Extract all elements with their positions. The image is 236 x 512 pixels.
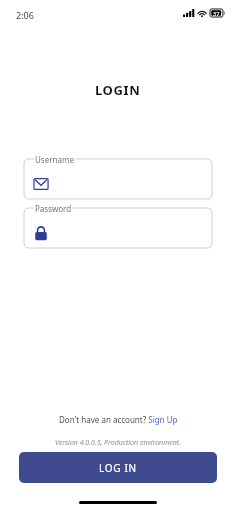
staticText: Don't have an account? Sign Up [59, 414, 178, 425]
staticText: LOGIN [95, 81, 141, 99]
button[interactable]: Username [24, 159, 212, 199]
staticText: 37 [213, 10, 220, 17]
staticText: Username [35, 154, 74, 165]
button[interactable]: LOG IN [19, 452, 217, 483]
staticText: 2:06 [16, 9, 34, 21]
staticText: Version 4.0.0.5, Production environment. [55, 438, 181, 448]
button[interactable]: Password [24, 208, 212, 248]
button[interactable]: Don't have an account? Sign Up [55, 412, 182, 427]
staticText: Password [35, 203, 72, 214]
other: Email [33, 176, 49, 192]
other: Password [33, 225, 49, 241]
staticText: LOG IN [99, 461, 137, 475]
